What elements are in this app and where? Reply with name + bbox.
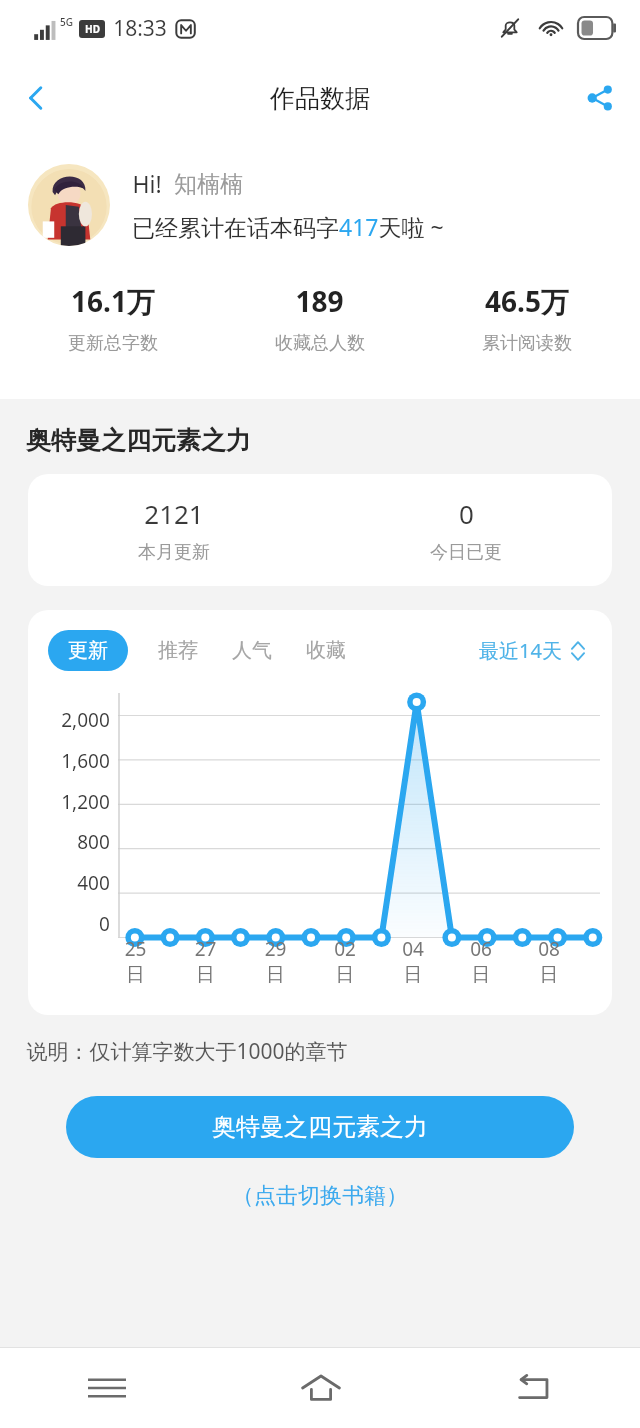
button[interactable]: Recents [0, 1348, 214, 1428]
button[interactable]: 人气 [228, 630, 276, 671]
staticText: 本月更新 [138, 541, 210, 564]
button[interactable]: 奥特曼之四元素之力 [66, 1096, 574, 1158]
staticText: 27日 [188, 936, 223, 987]
staticText: 29日 [258, 936, 293, 987]
staticText: 收藏 [306, 638, 346, 663]
staticText: 0 [99, 911, 110, 937]
staticText: 累计阅读数 [482, 332, 572, 355]
staticText: 08日 [532, 936, 566, 987]
staticText: 知楠楠 [174, 170, 243, 199]
button[interactable]: 2121 [28, 474, 612, 586]
staticText: 推荐 [158, 638, 198, 663]
staticText: （点击切换书籍） [232, 1182, 408, 1210]
staticText: 收藏总人数 [275, 332, 365, 355]
staticText: 作品数据 [270, 83, 370, 114]
staticText: HD [85, 22, 100, 36]
staticText: 46.5万 [485, 282, 569, 320]
button[interactable]: 最近14天 [475, 633, 590, 668]
staticText: 说明：仅计算字数大于1000的章节 [26, 1037, 348, 1066]
button[interactable]: 46.5万 [423, 282, 630, 355]
staticText: 最近14天 [479, 637, 562, 664]
staticText: 奥特曼之四元素之力 [26, 425, 251, 456]
button[interactable]: Share [572, 70, 628, 126]
staticText: 0 [459, 496, 474, 531]
staticText: 06日 [464, 936, 498, 987]
button[interactable]: 收藏 [302, 630, 350, 671]
staticText: 今日已更 [430, 541, 502, 564]
button[interactable]: 更新 [48, 630, 128, 671]
button[interactable]: Back [8, 70, 64, 126]
button[interactable]: 16.1万 [10, 282, 216, 355]
staticText: 2121 [144, 496, 204, 531]
staticText: 已经累计在话本码字417天啦 ~ [132, 211, 444, 242]
staticText: 1,600 [61, 748, 110, 774]
staticText: 25日 [118, 936, 153, 987]
staticText: 更新总字数 [68, 332, 158, 355]
staticText: 2,000 [61, 707, 110, 733]
staticText: 16.1万 [71, 282, 155, 320]
staticText: 5G [60, 15, 73, 29]
button[interactable]: Home [214, 1348, 427, 1428]
staticText: 02日 [328, 936, 362, 987]
staticText: 1,200 [61, 789, 110, 815]
staticText: Hi! [132, 168, 162, 199]
staticText: 04日 [396, 936, 430, 987]
staticText: 奥特曼之四元素之力 [212, 1112, 428, 1142]
staticText: 人气 [232, 638, 272, 663]
button[interactable]: Back [427, 1348, 640, 1428]
button[interactable]: （点击切换书籍） [226, 1176, 414, 1216]
staticText: 800 [77, 829, 110, 855]
staticText: 400 [77, 870, 110, 896]
staticText: 18:33 [113, 14, 167, 43]
staticText: 更新 [68, 638, 108, 663]
button[interactable]: 189 [216, 282, 423, 355]
button[interactable]: 推荐 [154, 630, 202, 671]
staticText: 189 [295, 282, 344, 320]
